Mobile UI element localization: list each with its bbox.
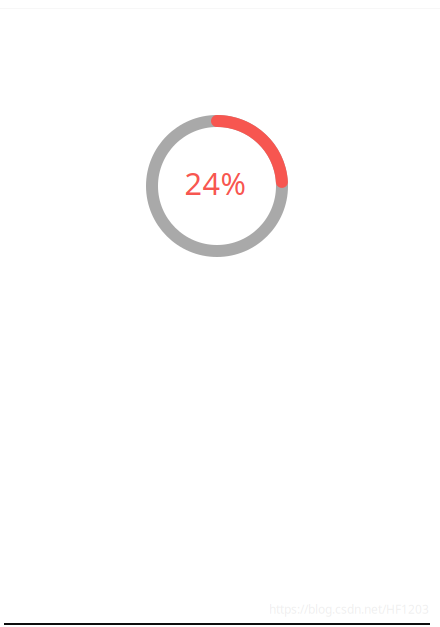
staticText: https://blog.csdn.net/HF1203 <box>269 601 429 617</box>
staticText: 24% <box>184 163 245 203</box>
